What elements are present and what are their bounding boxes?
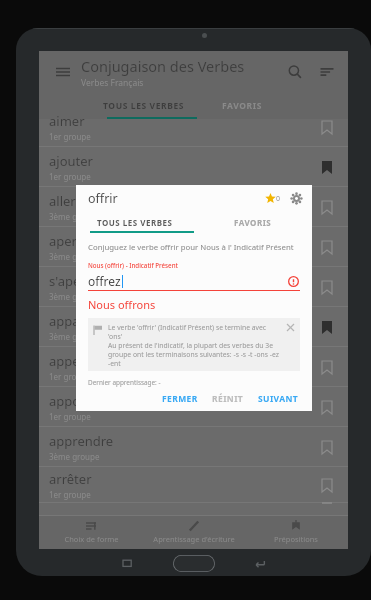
staticText: Nous (offrir) - Indicatif Présent bbox=[88, 261, 178, 269]
button[interactable]: s'apercevoir bbox=[39, 267, 348, 307]
button[interactable]: Favourites count bbox=[265, 193, 281, 204]
staticText: apparaître bbox=[49, 312, 113, 330]
staticText: appeler bbox=[49, 352, 96, 370]
staticText: 3ème groupe bbox=[49, 251, 100, 262]
staticText: 1er groupe bbox=[49, 131, 91, 142]
staticText: Choix de forme bbox=[64, 534, 119, 544]
button[interactable]: FERMER bbox=[157, 389, 203, 409]
button[interactable]: Aprentissage d'écriture bbox=[144, 515, 244, 549]
staticText: FAVORIS bbox=[222, 100, 262, 112]
staticText: RÉINIT bbox=[212, 393, 244, 405]
button[interactable]: FAVORIS bbox=[194, 211, 312, 233]
staticText: 0 bbox=[276, 194, 281, 204]
button[interactable]: apparaître bbox=[39, 307, 348, 347]
staticText: offrir bbox=[88, 190, 118, 207]
staticText: 3ème groupe bbox=[49, 451, 100, 462]
button[interactable]: Recent apps bbox=[115, 550, 141, 576]
staticText: Conjugaison des Verbes bbox=[81, 56, 245, 76]
button[interactable]: appeler bbox=[39, 347, 348, 387]
button[interactable]: Toggle favourite apporter bbox=[316, 396, 338, 418]
other: Error bbox=[286, 274, 300, 288]
button[interactable]: aimer bbox=[39, 107, 348, 147]
staticText: Aprentissage d'écriture bbox=[153, 534, 235, 544]
staticText: offrez bbox=[88, 273, 121, 289]
button[interactable]: Toggle favourite apprendre bbox=[316, 436, 338, 458]
staticText: Dernier apprentissage: - bbox=[88, 378, 161, 387]
button[interactable]: Choix de forme bbox=[41, 515, 141, 549]
staticText: arrêter bbox=[49, 470, 92, 488]
button[interactable]: apprendre bbox=[39, 427, 348, 467]
staticText: Nous offrons bbox=[88, 297, 156, 312]
button[interactable]: Back bbox=[247, 550, 273, 576]
staticText: aller bbox=[49, 192, 76, 210]
staticText: Au présent de l'indicatif, la plupart de… bbox=[108, 341, 282, 368]
button[interactable]: RÉINIT bbox=[207, 389, 249, 409]
staticText: s'apercevoir bbox=[49, 272, 122, 290]
staticText: Conjuguez le verbe offrir pour Nous à l'… bbox=[88, 242, 294, 253]
button[interactable]: ajouter bbox=[39, 147, 348, 187]
staticText: 3ème groupe bbox=[49, 211, 100, 222]
staticText: ajouter bbox=[49, 152, 93, 170]
staticText: 3ème groupe bbox=[49, 331, 100, 342]
button[interactable]: Toggle favourite apercevoir bbox=[316, 236, 338, 258]
staticText: Verbes Français bbox=[81, 77, 144, 89]
staticText: apprendre bbox=[49, 432, 114, 450]
staticText: aimer bbox=[49, 112, 85, 130]
staticText: 1er groupe bbox=[49, 171, 91, 182]
button[interactable]: Toggle favourite aller bbox=[316, 196, 338, 218]
button[interactable]: Sort bbox=[314, 59, 340, 85]
button[interactable]: TOUS LES VERBES bbox=[91, 93, 197, 119]
staticText: 1er groupe bbox=[49, 371, 91, 382]
button[interactable]: Search bbox=[282, 59, 308, 85]
staticText: TOUS LES VERBES bbox=[97, 217, 173, 228]
button[interactable]: Toggle favourite apparaître bbox=[316, 316, 338, 338]
staticText: TOUS LES VERBES bbox=[103, 100, 185, 112]
staticText: apercevoir bbox=[49, 232, 114, 250]
button[interactable]: arrêter bbox=[39, 467, 348, 503]
button[interactable]: SUIVANT bbox=[253, 389, 304, 409]
staticText: apporter bbox=[49, 392, 103, 410]
button[interactable]: FAVORIS bbox=[197, 93, 287, 119]
button[interactable]: apporter bbox=[39, 387, 348, 427]
staticText: 1er groupe bbox=[49, 411, 91, 422]
button[interactable]: Toggle favourite aimer bbox=[316, 116, 338, 138]
button[interactable]: Toggle favourite arrêter bbox=[316, 474, 338, 496]
button[interactable]: TOUS LES VERBES bbox=[76, 211, 194, 233]
button[interactable]: Settings bbox=[288, 190, 304, 206]
staticText: FERMER bbox=[162, 393, 198, 405]
button[interactable]: Toggle favourite ajouter bbox=[316, 156, 338, 178]
staticText: 1er groupe bbox=[49, 489, 91, 500]
button[interactable]: Toggle favourite s'apercevoir bbox=[316, 276, 338, 298]
button[interactable]: Toggle favourite appeler bbox=[316, 356, 338, 378]
button[interactable]: Prépositions bbox=[246, 515, 346, 549]
button[interactable]: Home bbox=[173, 555, 215, 572]
button[interactable]: apercevoir bbox=[39, 227, 348, 267]
button[interactable]: aller bbox=[39, 187, 348, 227]
staticText: Le verbe 'offrir' (Indicatif Présent) se… bbox=[108, 323, 282, 341]
staticText: FAVORIS bbox=[234, 217, 272, 228]
staticText: SUIVANT bbox=[258, 393, 299, 405]
button[interactable]: Dismiss hint bbox=[284, 321, 297, 334]
staticText: 3ème groupe bbox=[49, 291, 100, 302]
staticText: Prépositions bbox=[274, 534, 318, 544]
button[interactable]: Open navigation menu bbox=[51, 60, 75, 84]
